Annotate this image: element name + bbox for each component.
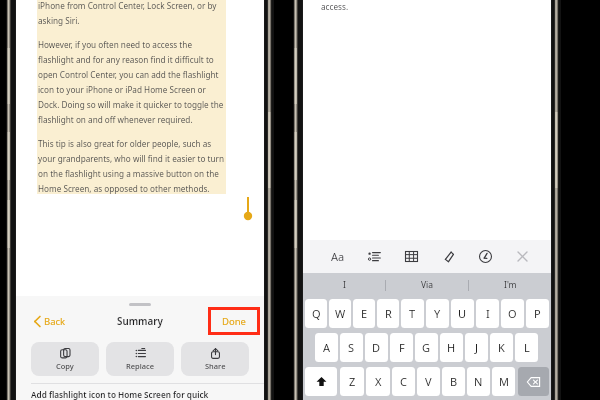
button[interactable]: Via xyxy=(386,273,468,297)
staticText: Q xyxy=(312,306,321,321)
staticText: Copy xyxy=(56,361,74,371)
staticText: Z xyxy=(349,374,356,389)
button[interactable]: Z xyxy=(340,367,364,396)
staticText: Share xyxy=(205,361,226,371)
button[interactable]: N xyxy=(467,367,490,396)
button[interactable]: Close xyxy=(504,240,541,273)
button[interactable]: W xyxy=(329,299,351,328)
button[interactable]: Copy xyxy=(31,342,99,376)
staticText: M xyxy=(499,374,509,389)
button[interactable]: Back xyxy=(34,315,66,328)
staticText: F xyxy=(399,340,405,355)
button[interactable]: U xyxy=(451,299,474,328)
button[interactable]: G xyxy=(415,333,438,362)
button[interactable]: C xyxy=(392,367,415,396)
button[interactable]: S xyxy=(340,333,363,362)
staticText: Add flashlight icon to Home Screen for q… xyxy=(31,389,209,400)
staticText: R xyxy=(385,306,392,321)
button[interactable]: Attach xyxy=(430,240,467,273)
button[interactable]: Lists xyxy=(356,240,393,273)
staticText: S xyxy=(348,340,355,355)
staticText: B xyxy=(450,374,458,389)
button[interactable]: Markup xyxy=(467,240,504,273)
staticText: Y xyxy=(434,306,441,321)
button[interactable]: Summary xyxy=(117,315,163,328)
staticText: H xyxy=(447,340,456,355)
button[interactable]: M xyxy=(492,367,515,396)
staticText: Summary xyxy=(117,315,163,328)
button[interactable]: Y xyxy=(426,299,449,328)
staticText: Aa xyxy=(331,249,345,264)
staticText: P xyxy=(534,306,541,321)
button[interactable]: R xyxy=(377,299,399,328)
staticText: E xyxy=(361,306,368,321)
staticText: O xyxy=(508,306,517,321)
button[interactable]: K xyxy=(490,333,513,362)
button[interactable]: H xyxy=(440,333,463,362)
staticText: I'm xyxy=(504,279,517,291)
button[interactable]: D xyxy=(365,333,388,362)
button[interactable]: I'm xyxy=(469,273,551,297)
staticText: Back xyxy=(44,315,66,328)
button[interactable]: T xyxy=(401,299,424,328)
staticText: U xyxy=(458,306,467,321)
button[interactable]: I xyxy=(476,299,499,328)
staticText: D xyxy=(372,340,381,355)
staticText: L xyxy=(524,340,530,355)
button[interactable]: B xyxy=(442,367,465,396)
button[interactable]: V xyxy=(417,367,440,396)
staticText: I xyxy=(343,279,346,291)
staticText: G xyxy=(422,340,431,355)
button[interactable]: O xyxy=(501,299,524,328)
button[interactable]: Shift xyxy=(305,367,337,396)
button[interactable]: P xyxy=(526,299,549,328)
staticText: X xyxy=(375,374,382,389)
staticText: iPhone from Control Center, Lock Screen,… xyxy=(38,0,217,26)
staticText: This tip is also great for older people,… xyxy=(38,138,225,194)
button[interactable]: Q xyxy=(305,299,327,328)
staticText: W xyxy=(335,306,346,321)
staticText: Replace xyxy=(126,361,154,371)
button[interactable]: F xyxy=(390,333,413,362)
staticText: I xyxy=(486,306,490,321)
staticText: However, if you often need to access the… xyxy=(38,39,224,125)
staticText: Done xyxy=(222,315,246,328)
staticText: J xyxy=(475,340,479,355)
button[interactable]: J xyxy=(465,333,488,362)
staticText: N xyxy=(474,374,483,389)
staticText: access. xyxy=(321,1,349,12)
button[interactable]: I xyxy=(303,273,385,297)
button[interactable]: Replace xyxy=(106,342,174,376)
button[interactable]: Share xyxy=(181,342,249,376)
staticText: K xyxy=(498,340,505,355)
button[interactable]: E xyxy=(353,299,375,328)
button[interactable]: Table xyxy=(393,240,430,273)
staticText: C xyxy=(400,374,407,389)
button[interactable]: L xyxy=(515,333,538,362)
button[interactable]: X xyxy=(366,367,390,396)
button[interactable]: Done xyxy=(211,310,257,332)
staticText: Via xyxy=(421,279,434,291)
staticText: A xyxy=(323,340,331,355)
button[interactable]: A xyxy=(315,333,338,362)
staticText: V xyxy=(425,374,432,389)
button[interactable]: Backspace xyxy=(518,367,549,396)
button[interactable]: Aa xyxy=(319,240,356,273)
staticText: T xyxy=(409,306,416,321)
